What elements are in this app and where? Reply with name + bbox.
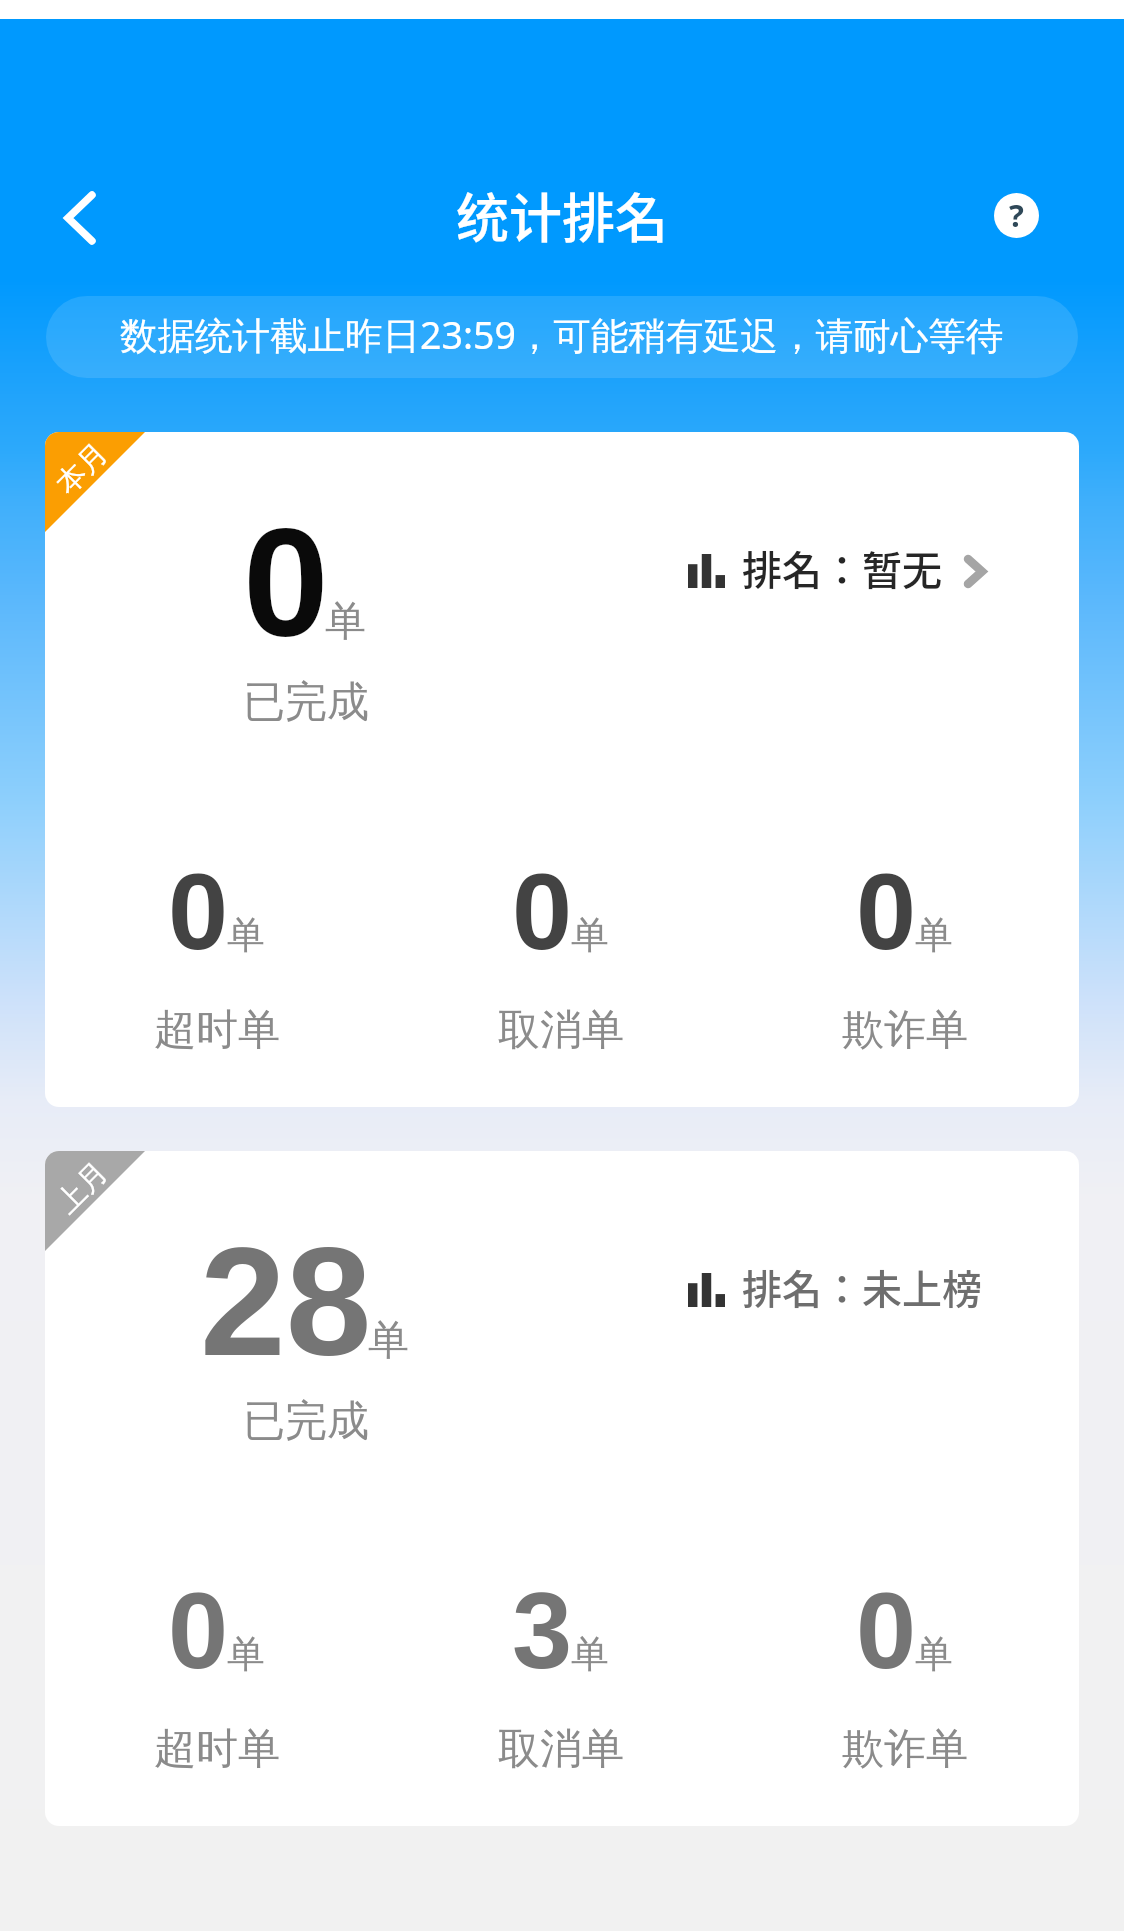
staticText: 0	[243, 497, 329, 669]
staticText: 0	[856, 851, 917, 972]
button[interactable]: Back	[42, 177, 118, 253]
button[interactable]: 排名：暂无	[688, 539, 986, 591]
button[interactable]: Help	[983, 182, 1049, 248]
staticText: 统计排名	[456, 177, 668, 254]
staticText: 本月	[48, 435, 116, 502]
button[interactable]: 28	[45, 1151, 1079, 1826]
staticText: 排名：未上榜	[742, 1258, 982, 1310]
staticText: 单	[571, 911, 609, 959]
staticText: 上月	[48, 1154, 116, 1221]
staticText: 单	[915, 911, 953, 959]
staticText: 0	[168, 851, 229, 972]
staticText: ?	[1009, 194, 1024, 236]
staticText: 单	[325, 596, 366, 648]
button[interactable]: 0	[45, 1570, 389, 1790]
button[interactable]: 0	[733, 1570, 1077, 1790]
staticText: 0	[512, 851, 573, 972]
button[interactable]: 0	[389, 851, 733, 1071]
staticText: 排名：暂无	[742, 539, 942, 591]
staticText: 已完成	[243, 676, 369, 729]
staticText: 单	[227, 1630, 265, 1678]
staticText: 已完成	[243, 1395, 369, 1448]
button[interactable]: 0	[45, 851, 389, 1071]
button[interactable]: 0	[733, 851, 1077, 1071]
staticText: 取消单	[498, 1723, 624, 1776]
staticText: 3	[512, 1570, 573, 1691]
staticText: 欺诈单	[842, 1004, 968, 1057]
staticText: 单	[227, 911, 265, 959]
staticText: 超时单	[154, 1723, 280, 1776]
staticText: 超时单	[154, 1004, 280, 1057]
staticText: 数据统计截止昨日23:59，可能稍有延迟，请耐心等待	[120, 309, 1004, 360]
staticText: 欺诈单	[842, 1723, 968, 1776]
button[interactable]: 3	[389, 1570, 733, 1790]
staticText: 取消单	[498, 1004, 624, 1057]
staticText: 单	[915, 1630, 953, 1678]
staticText: 单	[368, 1315, 409, 1367]
staticText: 单	[571, 1630, 609, 1678]
staticText: 28	[200, 1216, 372, 1388]
staticText: 0	[168, 1570, 229, 1691]
button[interactable]: 0	[45, 432, 1079, 1107]
button[interactable]: 排名：未上榜	[688, 1258, 982, 1310]
staticText: 0	[856, 1570, 917, 1691]
